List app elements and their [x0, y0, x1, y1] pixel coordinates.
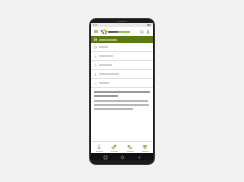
button[interactable]: Menu: [93, 29, 99, 35]
button[interactable]: [91, 79, 153, 87]
button[interactable]: Account: [145, 29, 151, 35]
button[interactable]: [91, 36, 153, 43]
button[interactable]: Back: [136, 154, 142, 160]
button[interactable]: Home: [119, 154, 125, 160]
button[interactable]: Cart: [123, 142, 137, 153]
button[interactable]: Home: [92, 142, 106, 153]
button[interactable]: [91, 61, 153, 69]
button[interactable]: Recents: [102, 154, 108, 160]
button[interactable]: [91, 70, 153, 78]
button[interactable]: Shop: [107, 142, 121, 153]
button[interactable]: [91, 43, 153, 51]
button[interactable]: Search: [139, 29, 145, 35]
button[interactable]: [100, 29, 130, 35]
button[interactable]: Account: [138, 142, 152, 153]
button[interactable]: [91, 52, 153, 60]
